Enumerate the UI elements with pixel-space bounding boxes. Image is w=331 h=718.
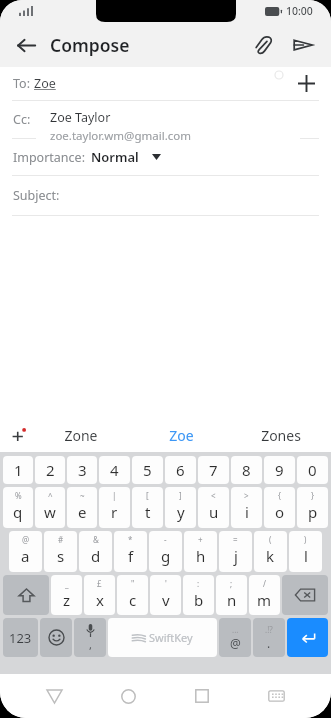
staticText: Normal: [91, 148, 139, 166]
staticText: z: [63, 590, 71, 610]
staticText: .!?: [265, 624, 273, 635]
button[interactable]: Add recipient: [289, 67, 323, 100]
button[interactable]: |: [99, 487, 130, 528]
button[interactable]: 4: [99, 456, 130, 484]
staticText: g: [161, 546, 171, 566]
staticText: 2: [46, 460, 55, 480]
button[interactable]: ": [117, 575, 148, 615]
button[interactable]: 3: [67, 456, 97, 484]
staticText: To:: [13, 75, 34, 92]
button[interactable]: .!?: [253, 618, 285, 657]
button[interactable]: ...: [219, 618, 251, 657]
button[interactable]: *: [114, 531, 147, 572]
staticText: _: [65, 578, 69, 589]
button[interactable]: 9: [264, 456, 295, 484]
staticText: n: [227, 590, 237, 610]
staticText: j: [234, 546, 238, 566]
staticText: Zones: [261, 426, 301, 445]
button[interactable]: {: [264, 487, 295, 528]
button[interactable]: #: [44, 531, 77, 572]
button[interactable]: 6: [165, 456, 196, 484]
button[interactable]: 7: [198, 456, 229, 484]
button[interactable]: Add word: [6, 422, 32, 448]
button[interactable]: [: [132, 487, 163, 528]
button[interactable]: £: [84, 575, 115, 615]
staticText: SwiftKey: [149, 630, 193, 645]
button[interactable]: Zones: [231, 418, 331, 452]
button[interactable]: Back: [18, 674, 91, 718]
button[interactable]: 1: [3, 456, 33, 484]
button[interactable]: +: [184, 531, 217, 572]
staticText: s: [57, 546, 65, 566]
staticText: 9: [275, 460, 284, 480]
staticText: m: [257, 590, 272, 610]
staticText: (: [269, 534, 272, 545]
button[interactable]: ': [150, 575, 181, 615]
staticText: i: [245, 502, 249, 522]
staticText: w: [44, 502, 56, 522]
staticText: Zoe: [34, 75, 56, 92]
button[interactable]: Voice input: [74, 618, 106, 657]
button[interactable]: =: [219, 531, 252, 572]
button[interactable]: 5: [132, 456, 163, 484]
staticText: o: [275, 502, 285, 522]
button[interactable]: 2: [35, 456, 65, 484]
button[interactable]: :: [183, 575, 214, 615]
staticText: c: [129, 590, 137, 610]
button[interactable]: Send: [285, 27, 321, 63]
button[interactable]: Normal: [91, 148, 161, 166]
button[interactable]: &: [79, 531, 112, 572]
staticText: v: [162, 590, 170, 610]
staticText: 5: [143, 460, 152, 480]
button[interactable]: Hide keyboard: [239, 674, 313, 718]
button[interactable]: Cc:: [0, 101, 331, 138]
button[interactable]: Backspace: [282, 575, 328, 615]
button[interactable]: }: [297, 487, 328, 528]
staticText: e: [78, 502, 87, 522]
button[interactable]: ;: [216, 575, 247, 615]
button[interactable]: Emoji: [40, 618, 72, 657]
button[interactable]: Home: [91, 674, 165, 718]
staticText: ^: [48, 490, 53, 501]
button[interactable]: Back: [8, 27, 44, 63]
staticText: Compose: [50, 33, 130, 57]
button[interactable]: 0: [297, 456, 328, 484]
button[interactable]: @: [9, 531, 42, 572]
staticText: b: [194, 590, 204, 610]
button[interactable]: /: [249, 575, 280, 615]
staticText: d: [91, 546, 101, 566]
button[interactable]: ~: [67, 487, 97, 528]
staticText: l: [304, 546, 308, 566]
button[interactable]: %: [3, 487, 33, 528]
staticText: .: [267, 635, 271, 651]
button[interactable]: Shift: [3, 575, 49, 615]
button[interactable]: 123: [3, 618, 38, 657]
staticText: ': [165, 578, 167, 589]
button[interactable]: -: [149, 531, 182, 572]
staticText: Zoe Taylor: [50, 109, 111, 126]
button[interactable]: Enter: [287, 618, 328, 657]
button[interactable]: Subject:: [0, 176, 331, 215]
staticText: :: [197, 578, 200, 589]
button[interactable]: Zoe: [131, 418, 231, 452]
button[interactable]: (: [254, 531, 287, 572]
button[interactable]: ^: [35, 487, 65, 528]
button[interactable]: ): [289, 531, 322, 572]
button[interactable]: Space: [108, 618, 217, 657]
button[interactable]: Recents: [165, 674, 239, 718]
staticText: £: [97, 578, 102, 589]
button[interactable]: Zoe Taylor: [36, 102, 300, 150]
button[interactable]: Attach: [245, 27, 281, 63]
staticText: ;: [230, 578, 233, 589]
button[interactable]: >: [231, 487, 262, 528]
button[interactable]: Zone: [30, 418, 131, 452]
button[interactable]: To:: [0, 67, 331, 100]
button[interactable]: 8: [231, 456, 262, 484]
staticText: Cc:: [13, 111, 31, 128]
staticText: y: [177, 502, 185, 522]
staticText: Zone: [64, 426, 98, 445]
button[interactable]: _: [51, 575, 82, 615]
button[interactable]: ]: [165, 487, 196, 528]
staticText: /: [263, 578, 266, 589]
button[interactable]: <: [198, 487, 229, 528]
